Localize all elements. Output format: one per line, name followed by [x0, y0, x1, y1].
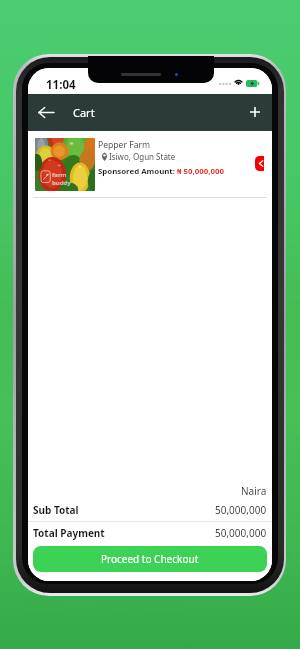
- staticText: 50,000,000: [215, 526, 267, 540]
- button[interactable]: Delete item: [255, 156, 264, 171]
- staticText: Total Payment: [33, 526, 105, 540]
- staticText: ₦ 50,000,000: [177, 166, 224, 177]
- staticText: farm: [52, 171, 67, 179]
- button[interactable]: Proceed to Checkout: [33, 546, 267, 572]
- staticText: Pepper Farm: [98, 139, 151, 151]
- staticText: buddy: [52, 179, 71, 187]
- button[interactable]: Back: [33, 99, 59, 125]
- button[interactable]: [31, 134, 269, 197]
- staticText: 50,000,000: [215, 503, 267, 517]
- button[interactable]: Add item: [242, 99, 268, 125]
- staticText: 11:04: [46, 77, 76, 93]
- staticText: Proceed to Checkout: [101, 552, 199, 566]
- staticText: Naira: [241, 484, 267, 498]
- staticText: Isiwo, Ogun State: [109, 151, 176, 162]
- staticText: Sponsored Amount:: [98, 166, 177, 177]
- staticText: Sub Total: [33, 503, 79, 517]
- staticText: Cart: [73, 105, 95, 120]
